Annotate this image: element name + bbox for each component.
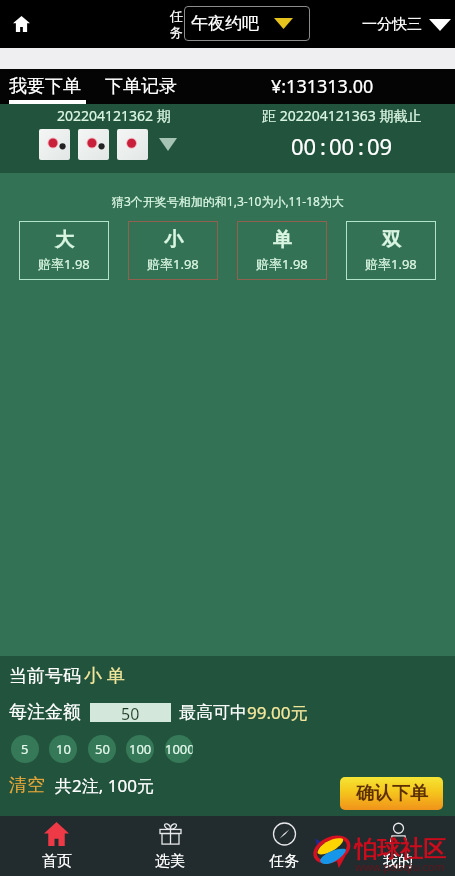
button[interactable]: 大 — [19, 221, 109, 280]
staticText: 00 — [291, 131, 317, 161]
button[interactable]: 小 — [128, 221, 218, 280]
staticText: 确认下单 — [356, 782, 428, 805]
staticText: 99.00元 — [247, 701, 308, 724]
staticText: 任务 — [269, 852, 299, 871]
button[interactable]: 10 — [49, 735, 77, 763]
staticText: 50 — [121, 703, 140, 722]
button[interactable]: 选美 — [113, 816, 227, 876]
staticText: 赔率1.98 — [38, 255, 90, 273]
button[interactable]: 首页 — [0, 816, 113, 876]
button[interactable]: 50 — [88, 735, 116, 763]
button[interactable]: 1000 — [165, 735, 193, 763]
staticText: 我要下单 — [9, 75, 81, 98]
staticText: 1000 — [165, 740, 193, 758]
staticText: ¥:131313.00 — [271, 74, 374, 99]
staticText: 小 单 — [84, 663, 125, 688]
staticText: 共2注, 100元 — [55, 774, 154, 797]
staticText: 午夜约吧 — [191, 13, 259, 34]
button[interactable]: 100 — [126, 735, 154, 763]
staticText: 距 202204121363 期截止 — [262, 106, 422, 125]
button[interactable]: 我的 — [341, 816, 455, 876]
staticText: 首页 — [42, 852, 72, 871]
button[interactable]: 一分快三 — [362, 15, 451, 34]
button[interactable]: 午夜约吧 — [184, 6, 310, 41]
staticText: 一分快三 — [362, 15, 422, 34]
staticText: 00 — [329, 131, 355, 161]
button[interactable]: 双 — [346, 221, 436, 280]
staticText: 赔率1.98 — [365, 255, 417, 273]
button[interactable]: 5 — [11, 735, 39, 763]
button[interactable]: 下单记录 — [105, 75, 177, 98]
staticText: 202204121362 期 — [57, 106, 171, 125]
button[interactable]: 单 — [237, 221, 327, 280]
staticText: 单 — [273, 228, 292, 252]
staticText: 怕球社区 — [354, 835, 446, 864]
staticText: 10 — [56, 740, 71, 758]
staticText: 选美 — [155, 852, 185, 871]
staticText: 双 — [382, 228, 401, 252]
staticText: 50 — [95, 740, 110, 758]
staticText: www.pabqiu.com — [355, 859, 445, 874]
button[interactable]: 任务 — [227, 816, 341, 876]
staticText: 大 — [55, 228, 74, 252]
staticText: 下单记录 — [105, 75, 177, 98]
button[interactable]: 清空 — [9, 774, 45, 797]
staticText: 小 — [164, 228, 183, 252]
staticText: 当前号码 — [9, 665, 81, 688]
staticText: 我的 — [383, 852, 413, 871]
staticText: 赔率1.98 — [256, 255, 308, 273]
staticText: : — [320, 131, 326, 161]
staticText: 务 — [170, 24, 183, 40]
staticText: : — [358, 131, 364, 161]
staticText: 最高可中 — [179, 702, 247, 723]
staticText: 100 — [129, 740, 152, 758]
staticText: 5 — [21, 740, 29, 758]
staticText: 09 — [367, 131, 393, 161]
staticText: 任 — [170, 8, 183, 24]
button[interactable]: Home — [4, 7, 38, 41]
button[interactable]: 确认下单 — [340, 777, 443, 810]
staticText: 猜3个开奖号相加的和1,3-10为小,11-18为大 — [112, 193, 344, 209]
staticText: 赔率1.98 — [147, 255, 199, 273]
button[interactable]: 50 — [90, 703, 171, 722]
staticText: 每注金额 — [9, 701, 81, 724]
button[interactable]: 我要下单 — [9, 75, 81, 98]
